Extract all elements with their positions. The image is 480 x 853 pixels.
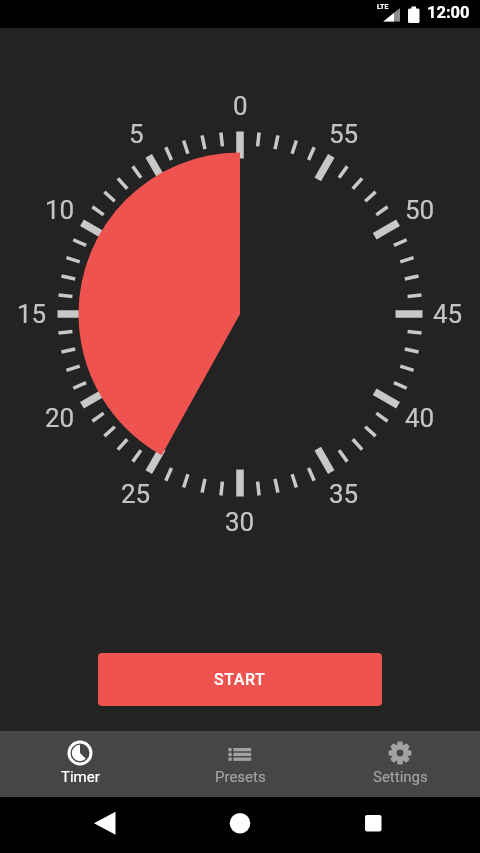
staticText: 10 [45,195,75,225]
staticText: 30 [225,507,255,537]
button[interactable]: Presets [160,731,320,797]
button[interactable] [352,802,394,844]
staticText: Presets [215,768,266,786]
staticText: 12:00 [427,3,470,22]
button[interactable] [219,802,261,844]
staticText: Timer [61,768,100,786]
staticText: 50 [405,195,435,225]
staticText: 5 [129,119,144,149]
staticText: 15 [17,299,47,329]
button[interactable] [84,809,126,841]
staticText: 35 [329,479,359,509]
button[interactable]: Timer [0,731,160,797]
staticText: 40 [405,403,435,433]
staticText: LTE [377,3,389,11]
staticText: 0 [233,91,248,121]
button[interactable]: Settings [320,731,480,797]
staticText: 20 [45,403,75,433]
staticText: Settings [373,768,428,786]
staticText: 45 [433,299,463,329]
staticText: 25 [121,479,151,509]
staticText: START [214,670,266,689]
button[interactable]: START [98,653,382,706]
staticText: 55 [329,119,359,149]
